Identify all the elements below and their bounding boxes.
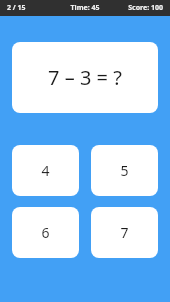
staticText: Score: 100: [111, 3, 163, 13]
button[interactable]: 6: [12, 207, 79, 258]
staticText: 4: [41, 161, 50, 180]
staticText: Time: 45: [59, 3, 111, 13]
button[interactable]: 5: [91, 145, 158, 196]
staticText: 6: [41, 223, 50, 242]
button[interactable]: 7 – 3 = ?: [12, 42, 158, 113]
staticText: 2 / 15: [7, 3, 59, 13]
staticText: 7 – 3 = ?: [48, 64, 122, 91]
button[interactable]: 4: [12, 145, 79, 196]
button[interactable]: 7: [91, 207, 158, 258]
staticText: 5: [120, 161, 129, 180]
staticText: 7: [120, 223, 129, 242]
